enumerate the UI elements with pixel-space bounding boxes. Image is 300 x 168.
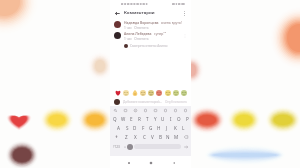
button[interactable]: Backspace xyxy=(180,132,191,141)
staticText: 1 час Ответить xyxy=(124,37,149,41)
button[interactable]: Shift xyxy=(110,132,122,141)
button[interactable]: F xyxy=(139,123,147,132)
staticText: L xyxy=(182,125,185,131)
button[interactable]: D xyxy=(131,123,139,132)
button[interactable]: Reaction 5 xyxy=(155,89,162,96)
button[interactable]: Recents xyxy=(124,158,133,167)
button[interactable]: U xyxy=(159,114,167,123)
staticText: G xyxy=(149,125,153,131)
button[interactable]: Reaction 3 xyxy=(139,89,146,96)
staticText: V xyxy=(151,134,154,140)
button[interactable]: Reaction 6 xyxy=(164,89,171,96)
staticText: B xyxy=(159,134,162,140)
button[interactable]: O xyxy=(175,114,183,123)
button[interactable]: Добавьте комментарий… xyxy=(123,98,165,105)
button[interactable]: E xyxy=(127,114,135,123)
button[interactable]: N xyxy=(164,132,172,141)
button[interactable]: Sticker xyxy=(132,107,139,114)
button[interactable]: Z xyxy=(122,132,131,141)
button[interactable]: Enter xyxy=(182,143,190,150)
button[interactable]: S xyxy=(123,123,131,132)
staticText: Смотреть ответы Алины xyxy=(130,44,168,48)
button[interactable]: Comma xyxy=(122,143,127,150)
staticText: Опубликовать xyxy=(165,100,188,104)
button[interactable]: K xyxy=(171,123,179,132)
staticText: C xyxy=(143,134,146,140)
button[interactable]: B xyxy=(156,132,164,141)
staticText: D xyxy=(133,125,137,131)
staticText: супер"" xyxy=(154,31,167,36)
button[interactable]: Symbols xyxy=(111,143,122,150)
button[interactable]: H xyxy=(155,123,163,132)
staticText: Алина Лебедева xyxy=(124,31,152,36)
button[interactable]: V xyxy=(148,132,156,141)
staticText: F xyxy=(142,125,145,131)
staticText: R xyxy=(138,116,141,122)
staticText: N xyxy=(166,134,170,140)
staticText: Добавьте комментарий… xyxy=(123,100,163,104)
staticText: S xyxy=(126,125,129,131)
button[interactable]: T xyxy=(143,114,151,123)
button[interactable]: Theme xyxy=(142,107,149,114)
button[interactable]: Settings xyxy=(172,107,179,114)
button[interactable]: Emoji xyxy=(162,107,169,114)
button[interactable]: More options xyxy=(181,10,188,17)
staticText: E xyxy=(130,116,133,122)
staticText: H xyxy=(157,125,161,131)
button[interactable]: Search xyxy=(112,107,119,114)
button[interactable]: Reaction 2 xyxy=(131,89,138,96)
staticText: O xyxy=(177,116,181,122)
staticText: Q xyxy=(113,116,117,122)
staticText: P xyxy=(186,116,189,122)
button[interactable]: P xyxy=(183,114,191,123)
staticText: M xyxy=(174,134,179,140)
staticText: W xyxy=(121,116,126,122)
staticText: A xyxy=(117,125,120,131)
button[interactable]: M xyxy=(172,132,180,141)
button[interactable]: Reaction 4 xyxy=(147,89,154,96)
staticText: J xyxy=(166,125,168,131)
staticText: K xyxy=(174,125,177,131)
staticText: Надежда Воронцова xyxy=(124,20,159,25)
button[interactable]: Reaction 8 xyxy=(180,89,187,96)
button[interactable]: GIF xyxy=(122,107,129,114)
button[interactable]: W xyxy=(119,114,127,123)
button[interactable]: R xyxy=(135,114,143,123)
button[interactable]: C xyxy=(140,132,148,141)
staticText: 1 час Ответить xyxy=(124,26,149,30)
button[interactable]: Voice input xyxy=(127,144,133,150)
staticText: Комментарии xyxy=(124,10,155,16)
button[interactable]: Q xyxy=(110,114,119,123)
button[interactable]: Смотреть ответы Алины xyxy=(110,41,191,51)
button[interactable]: Back xyxy=(113,9,121,17)
button[interactable]: I xyxy=(167,114,175,123)
staticText: Z xyxy=(125,134,128,140)
button[interactable]: Home xyxy=(146,158,155,167)
button[interactable]: Надежда Воронцова xyxy=(110,19,191,30)
button[interactable]: Y xyxy=(151,114,159,123)
button[interactable]: Reaction 1 xyxy=(122,89,129,96)
button[interactable]: J xyxy=(163,123,171,132)
button[interactable]: L xyxy=(179,123,187,132)
button[interactable]: Back xyxy=(169,158,178,167)
button[interactable]: Clipboard xyxy=(152,107,159,114)
staticText: I xyxy=(170,116,172,122)
staticText: ?123 xyxy=(113,145,120,149)
staticText: U xyxy=(161,116,165,122)
staticText: очень круто! xyxy=(161,20,182,25)
staticText: T xyxy=(146,116,149,122)
staticText: Y xyxy=(154,116,157,122)
button[interactable]: Reaction 7 xyxy=(172,89,179,96)
button[interactable]: Алина Лебедева xyxy=(110,30,191,41)
button[interactable]: Reaction 0 xyxy=(114,89,121,96)
button[interactable]: X xyxy=(131,132,140,141)
button[interactable]: More xyxy=(182,107,189,114)
button[interactable]: A xyxy=(114,123,123,132)
button[interactable]: G xyxy=(147,123,155,132)
staticText: X xyxy=(134,134,137,140)
